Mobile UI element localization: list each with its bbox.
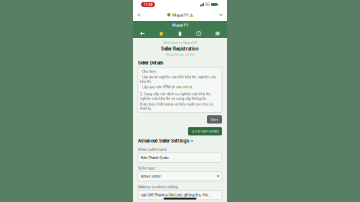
staticText: · Lập dự án nghiên cứu tiền khả thi, ngh… <box>140 75 216 84</box>
staticText: 17:48 <box>143 2 152 7</box>
staticText: Đảm bảo chất lượng và hiệu suất cao cho … <box>140 102 213 111</box>
staticText: Kiên Thành Quán <box>140 155 168 160</box>
staticText: Mapal PI <box>172 22 188 27</box>
button[interactable]: Products <box>171 31 189 36</box>
button[interactable]: Advanced Seller Settings <box>133 135 227 144</box>
staticText: Advanced Seller Settings <box>138 138 189 144</box>
staticText: Seller type <box>138 166 155 170</box>
staticText: Retail outlet name <box>138 147 167 152</box>
button[interactable]: ngõ 245 Thanh p Cát Linh, qĐống Đa, Hà N… <box>138 190 222 200</box>
staticText: 2. Cung cấp các dịch vụ nghiên cứu khả t… <box>140 92 211 101</box>
button[interactable]: Back <box>133 31 152 36</box>
staticText: Save <box>210 117 218 122</box>
staticText: Register as seller <box>166 52 194 56</box>
staticText: Seller Registration <box>161 46 199 51</box>
button[interactable]: Active seller <box>138 172 222 181</box>
staticText: · Lập quy ước RTM sẽ sao mô tả. <box>140 85 193 89</box>
staticText: Mapal PI <box>172 12 188 17</box>
button[interactable]: Save <box>207 115 222 124</box>
button[interactable]: History <box>189 31 208 36</box>
button[interactable]: Back <box>136 13 142 17</box>
button[interactable]: Home <box>152 31 171 36</box>
staticText: 5G <box>204 2 211 7</box>
button[interactable]: Browser menu <box>218 13 224 16</box>
staticText: Welcome to Mapal PI <box>163 41 197 45</box>
button[interactable]: Menu <box>208 32 227 35</box>
staticText: Seller Details <box>138 60 163 66</box>
button[interactable]: Go to Sell Center <box>188 127 222 135</box>
staticText: · Chủ tiệm <box>140 69 156 74</box>
staticText: Address or where selling <box>138 185 178 189</box>
staticText: Go to Sell Center <box>191 129 218 133</box>
staticText: ngõ 245 Thanh p Cát Linh, qĐống Đa, Hà N… <box>140 193 211 197</box>
staticText: Active seller <box>140 174 160 178</box>
button[interactable]: Kiên Thành Quán <box>138 153 222 162</box>
